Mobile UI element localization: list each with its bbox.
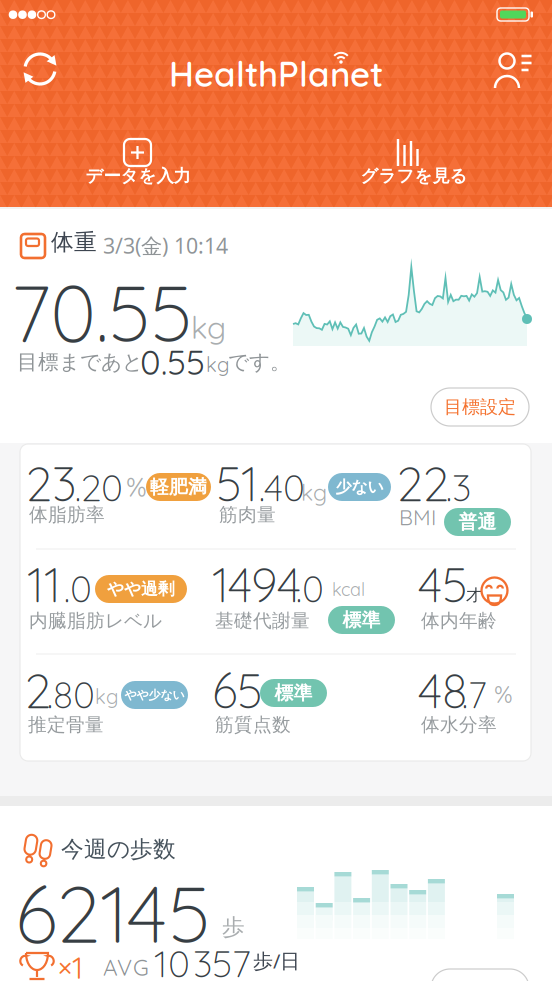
staticText: 2 — [25, 661, 51, 720]
staticText: 軽肥満 — [150, 475, 207, 499]
staticText: 70.55 — [11, 263, 192, 361]
button[interactable]: グラフを見る — [334, 132, 552, 981]
staticText: .40 — [259, 464, 305, 511]
staticText: 1494 — [212, 555, 301, 614]
staticText: AVG — [103, 953, 149, 981]
staticText: kcal — [332, 578, 365, 600]
staticText: 普通 — [458, 510, 496, 534]
staticText: ×1 — [58, 948, 83, 981]
staticText: kg — [95, 684, 118, 709]
staticText: 少ない — [335, 477, 383, 497]
staticText: % — [126, 470, 147, 503]
staticText: .0 — [64, 565, 92, 612]
staticText: kg — [191, 308, 226, 346]
staticText: 体内年齢 — [421, 609, 497, 632]
staticText: 標準 — [342, 608, 380, 632]
staticText: 筋肉量 — [219, 503, 276, 526]
staticText: kg — [301, 478, 327, 506]
staticText: .80 — [47, 671, 95, 718]
staticText: % — [494, 679, 513, 709]
staticText: 才 — [466, 585, 482, 605]
staticText: 62145 — [15, 864, 210, 962]
staticText: 標準 — [274, 681, 312, 705]
button[interactable]: 目標設定 — [431, 969, 529, 981]
staticText: 今週の歩数 — [61, 835, 176, 864]
staticText: 筋質点数 — [215, 713, 291, 736]
staticText: 体脂肪率 — [29, 503, 105, 526]
staticText: 10 — [154, 940, 190, 981]
staticText: 0.55 — [140, 340, 205, 383]
staticText: .0 — [296, 565, 324, 612]
staticText: 目標設定 — [444, 396, 516, 418]
staticText: .20 — [75, 464, 123, 511]
button[interactable]: 更新 — [12, 41, 68, 97]
staticText: HealthPlanet — [169, 52, 383, 95]
staticText: 45 — [418, 555, 467, 614]
staticText: 目標まであと — [17, 349, 143, 375]
staticText: 51 — [216, 454, 258, 513]
staticText: です。 — [228, 349, 291, 375]
staticText: 内臓脂肪レベル — [29, 609, 162, 632]
staticText: .3 — [446, 464, 471, 511]
staticText: 3/3(金) 10:14 — [103, 231, 228, 260]
button[interactable]: データを入力 — [58, 132, 552, 981]
button[interactable]: 目標設定 — [431, 388, 529, 426]
staticText: .7 — [462, 671, 487, 718]
staticText: やや過剰 — [107, 578, 175, 599]
staticText: 48 — [418, 661, 467, 720]
staticText: 357 — [193, 940, 251, 981]
staticText: 歩/日 — [253, 947, 300, 974]
staticText: グラフを見る — [360, 165, 467, 187]
button[interactable]: プロフィール — [490, 47, 538, 91]
staticText: 22 — [397, 454, 449, 513]
staticText: BMI — [399, 504, 436, 531]
staticText: やや少ない — [124, 687, 184, 702]
staticText: 歩 — [222, 913, 245, 942]
staticText: 11 — [27, 555, 61, 614]
staticText: 推定骨量 — [28, 713, 104, 736]
staticText: 基礎代謝量 — [215, 609, 310, 632]
staticText: データを入力 — [85, 165, 190, 187]
staticText: 体重 — [51, 228, 97, 257]
staticText: 65 — [212, 661, 262, 720]
staticText: 体水分率 — [421, 713, 497, 736]
staticText: 23 — [26, 454, 77, 513]
staticText: kg — [206, 352, 229, 377]
